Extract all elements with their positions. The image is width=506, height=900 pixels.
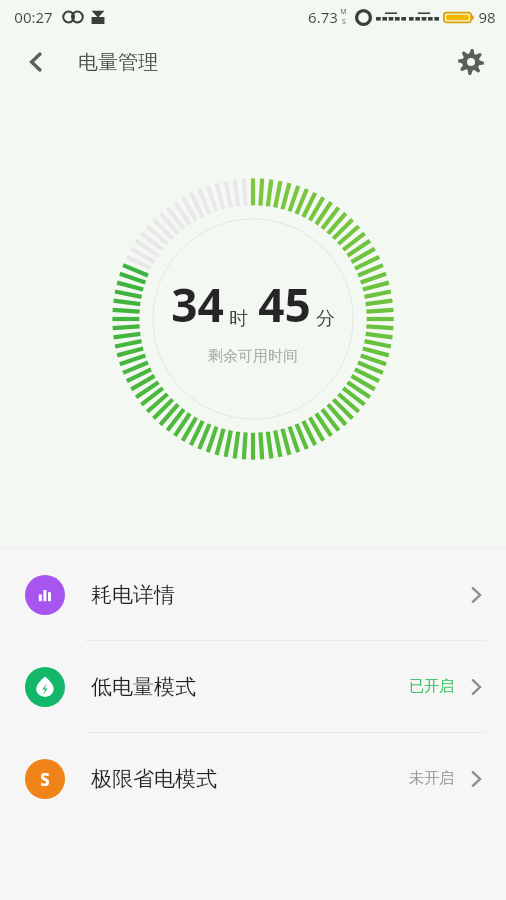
staticText: 时 (229, 307, 248, 331)
staticText: 剩余可用时间 (208, 347, 298, 366)
staticText: 低电量模式 (91, 674, 196, 700)
staticText: 45 (258, 273, 311, 336)
staticText: 电量管理 (78, 50, 158, 75)
staticText: 00:27 (14, 7, 53, 27)
button[interactable]: Back (14, 40, 58, 84)
staticText: S (342, 17, 346, 27)
button[interactable]: Settings (448, 39, 494, 85)
staticText: S (40, 768, 50, 791)
staticText: 极限省电模式 (91, 766, 217, 792)
button[interactable]: 低电量模式 (0, 641, 506, 732)
staticText: 分 (316, 307, 335, 331)
staticText: 98 (478, 7, 496, 27)
button[interactable]: 耗电详情 (0, 549, 506, 640)
staticText: 已开启 (409, 677, 454, 696)
staticText: 耗电详情 (91, 582, 175, 608)
staticText: 未开启 (409, 769, 454, 788)
staticText: 34 (171, 273, 224, 336)
button[interactable]: S (0, 733, 506, 824)
staticText: 6.73 (308, 7, 338, 27)
staticText: M (340, 7, 347, 17)
